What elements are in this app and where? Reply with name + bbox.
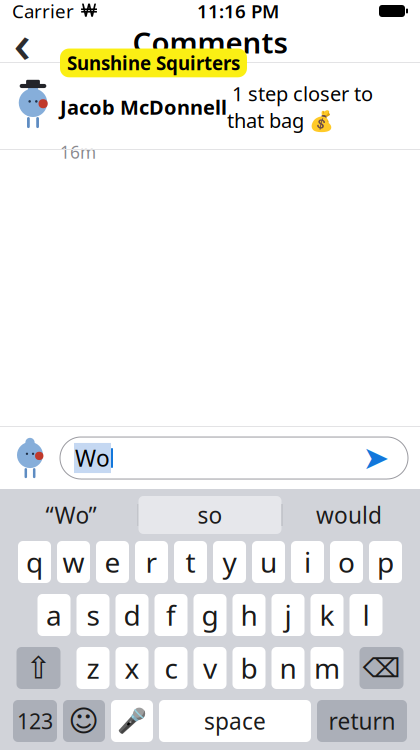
staticText: would <box>316 500 382 530</box>
button[interactable]: a <box>37 594 70 636</box>
button[interactable]: m <box>310 647 343 689</box>
staticText: e <box>104 543 120 581</box>
button[interactable]: f <box>154 594 187 636</box>
staticText: Comments <box>132 22 287 61</box>
staticText: space <box>204 706 266 736</box>
staticText: 123 <box>17 707 53 735</box>
button[interactable]: z <box>76 647 109 689</box>
staticText: j <box>284 596 291 634</box>
button[interactable]: n <box>271 647 304 689</box>
button[interactable]: would <box>282 496 415 534</box>
button[interactable]: space <box>159 700 311 742</box>
staticText: return <box>328 706 395 736</box>
button[interactable]: Back <box>0 22 44 62</box>
staticText: l <box>362 596 369 634</box>
button[interactable]: b <box>232 647 265 689</box>
staticText: p <box>377 543 394 581</box>
button[interactable]: x <box>115 647 148 689</box>
staticText: w <box>62 543 84 581</box>
button[interactable]: q <box>18 541 51 583</box>
staticText: ☺ <box>68 704 99 738</box>
button[interactable]: l <box>349 594 382 636</box>
staticText: Carrier <box>12 0 74 23</box>
staticText: b <box>240 649 257 687</box>
staticText: i <box>304 543 311 581</box>
staticText: Sunshine Squirters <box>67 50 240 75</box>
staticText: v <box>203 649 217 687</box>
staticText: m <box>314 649 340 687</box>
staticText: d <box>123 596 140 634</box>
button[interactable]: j <box>271 594 304 636</box>
staticText: z <box>86 649 99 687</box>
staticText: 🎤 <box>117 707 147 735</box>
staticText: t <box>185 543 195 581</box>
staticText: “Wo” <box>45 500 96 530</box>
staticText: a <box>46 596 62 634</box>
button[interactable]: Shift <box>16 647 60 689</box>
staticText: ⌫ <box>362 653 400 683</box>
button[interactable]: r <box>135 541 168 583</box>
staticText: ➤ <box>362 440 389 476</box>
staticText: u <box>260 543 277 581</box>
button[interactable]: 123 <box>13 700 57 742</box>
button[interactable]: k <box>310 594 343 636</box>
button[interactable]: v <box>193 647 226 689</box>
staticText: ‹ <box>13 7 30 77</box>
staticText: ⇧ <box>25 651 51 685</box>
staticText: n <box>279 649 296 687</box>
button[interactable]: Dictate <box>111 700 153 742</box>
button[interactable]: h <box>232 594 265 636</box>
button[interactable]: u <box>252 541 285 583</box>
staticText: g <box>201 596 218 634</box>
staticText: so <box>197 500 222 530</box>
button[interactable]: Emoji <box>63 700 105 742</box>
button[interactable]: t <box>174 541 207 583</box>
button[interactable]: y <box>213 541 246 583</box>
staticText: r <box>145 543 157 581</box>
staticText: 11:16 PM <box>197 0 279 23</box>
staticText: o <box>338 543 355 581</box>
staticText: 16m <box>60 140 96 163</box>
staticText: 1 step closer to that bag 💰 <box>227 80 373 133</box>
button[interactable]: w <box>57 541 90 583</box>
staticText: q <box>26 543 43 581</box>
staticText: y <box>222 543 236 581</box>
button[interactable]: Delete <box>359 647 403 689</box>
button[interactable]: d <box>115 594 148 636</box>
button[interactable]: return <box>317 700 407 742</box>
staticText: h <box>240 596 257 634</box>
button[interactable]: Send <box>358 440 394 476</box>
button[interactable]: “Wo” <box>4 496 137 534</box>
staticText: s <box>86 596 99 634</box>
staticText: x <box>124 649 139 687</box>
staticText: Jacob McDonnell <box>60 94 227 120</box>
button[interactable]: c <box>154 647 187 689</box>
staticText: c <box>164 649 177 687</box>
button[interactable]: p <box>369 541 402 583</box>
button[interactable]: g <box>193 594 226 636</box>
button[interactable]: so <box>138 496 281 534</box>
button[interactable]: i <box>291 541 324 583</box>
staticText: ￦ <box>80 0 97 22</box>
staticText: k <box>319 596 334 634</box>
staticText: Wo <box>75 443 110 473</box>
button[interactable]: s <box>76 594 109 636</box>
staticText: f <box>166 596 176 634</box>
button[interactable]: o <box>330 541 363 583</box>
button[interactable]: e <box>96 541 129 583</box>
